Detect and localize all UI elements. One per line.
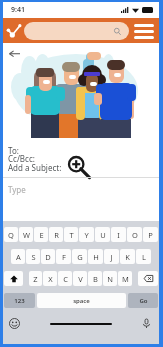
staticText: Type [8,184,26,195]
staticText: K [125,252,130,262]
staticText: G [77,252,83,262]
staticText: P [148,230,153,240]
staticText: N [107,274,113,284]
staticText: E [39,230,44,240]
staticText: J [110,252,113,262]
button[interactable]: S [26,249,40,264]
staticText: A [16,252,21,262]
button[interactable]: K [120,249,135,264]
button[interactable]: H [88,249,103,264]
button[interactable]: J [104,249,119,264]
staticText: B [93,274,98,284]
staticText: W [23,230,30,240]
staticText: O [132,230,138,240]
staticText: Add a Subject: [8,162,62,173]
staticText: M [122,274,129,284]
button[interactable]: Z [29,271,42,286]
button[interactable]: E [34,227,48,242]
button[interactable]: I [111,227,126,242]
staticText: V [78,274,83,284]
staticText: U [100,230,106,240]
staticText: Cc/Bcc: [8,153,35,164]
staticText: S [31,252,36,262]
button[interactable]: Send [5,22,23,40]
staticText: T [69,230,74,240]
staticText: Q [8,230,14,240]
button[interactable]: C [58,271,72,286]
staticText: F [62,252,66,262]
staticText: L [142,252,146,262]
button[interactable] [24,22,129,40]
staticText: C [63,274,68,284]
button[interactable]: L [136,249,151,264]
button[interactable]: D [41,249,55,264]
button[interactable]: O [127,227,142,242]
button[interactable]: V [73,271,87,286]
button[interactable]: Backspace [138,271,158,286]
staticText: I [117,230,120,240]
button[interactable]: Y [79,227,94,242]
button[interactable]: Back [6,45,22,61]
button[interactable]: B [88,271,102,286]
button[interactable]: Shift [4,271,23,286]
staticText: R [54,230,59,240]
button[interactable]: Emoji [7,316,21,330]
button[interactable]: P [143,227,158,242]
staticText: Y [84,230,89,240]
button[interactable]: T [64,227,78,242]
staticText: 9:41 [11,5,25,15]
button[interactable]: W [19,227,33,242]
staticText: X [48,274,53,284]
button[interactable]: X [43,271,57,286]
button[interactable]: A [11,249,25,264]
staticText: H [93,252,99,262]
button[interactable]: F [56,249,71,264]
button[interactable]: U [95,227,110,242]
staticText: To: [8,145,19,156]
button[interactable]: Go [128,293,158,308]
staticText: 123 [14,297,25,305]
button[interactable]: M [118,271,132,286]
button[interactable]: N [103,271,117,286]
button[interactable]: G [72,249,87,264]
button[interactable]: space [37,293,126,308]
staticText: D [45,252,51,262]
button[interactable]: Menu [133,20,155,42]
button[interactable]: R [49,227,63,242]
button[interactable]: Voice input [139,316,153,330]
staticText: space [73,297,90,305]
staticText: Go [139,297,148,305]
staticText: Z [33,274,38,284]
button[interactable]: Q [4,227,18,242]
button[interactable]: 123 [4,293,35,308]
